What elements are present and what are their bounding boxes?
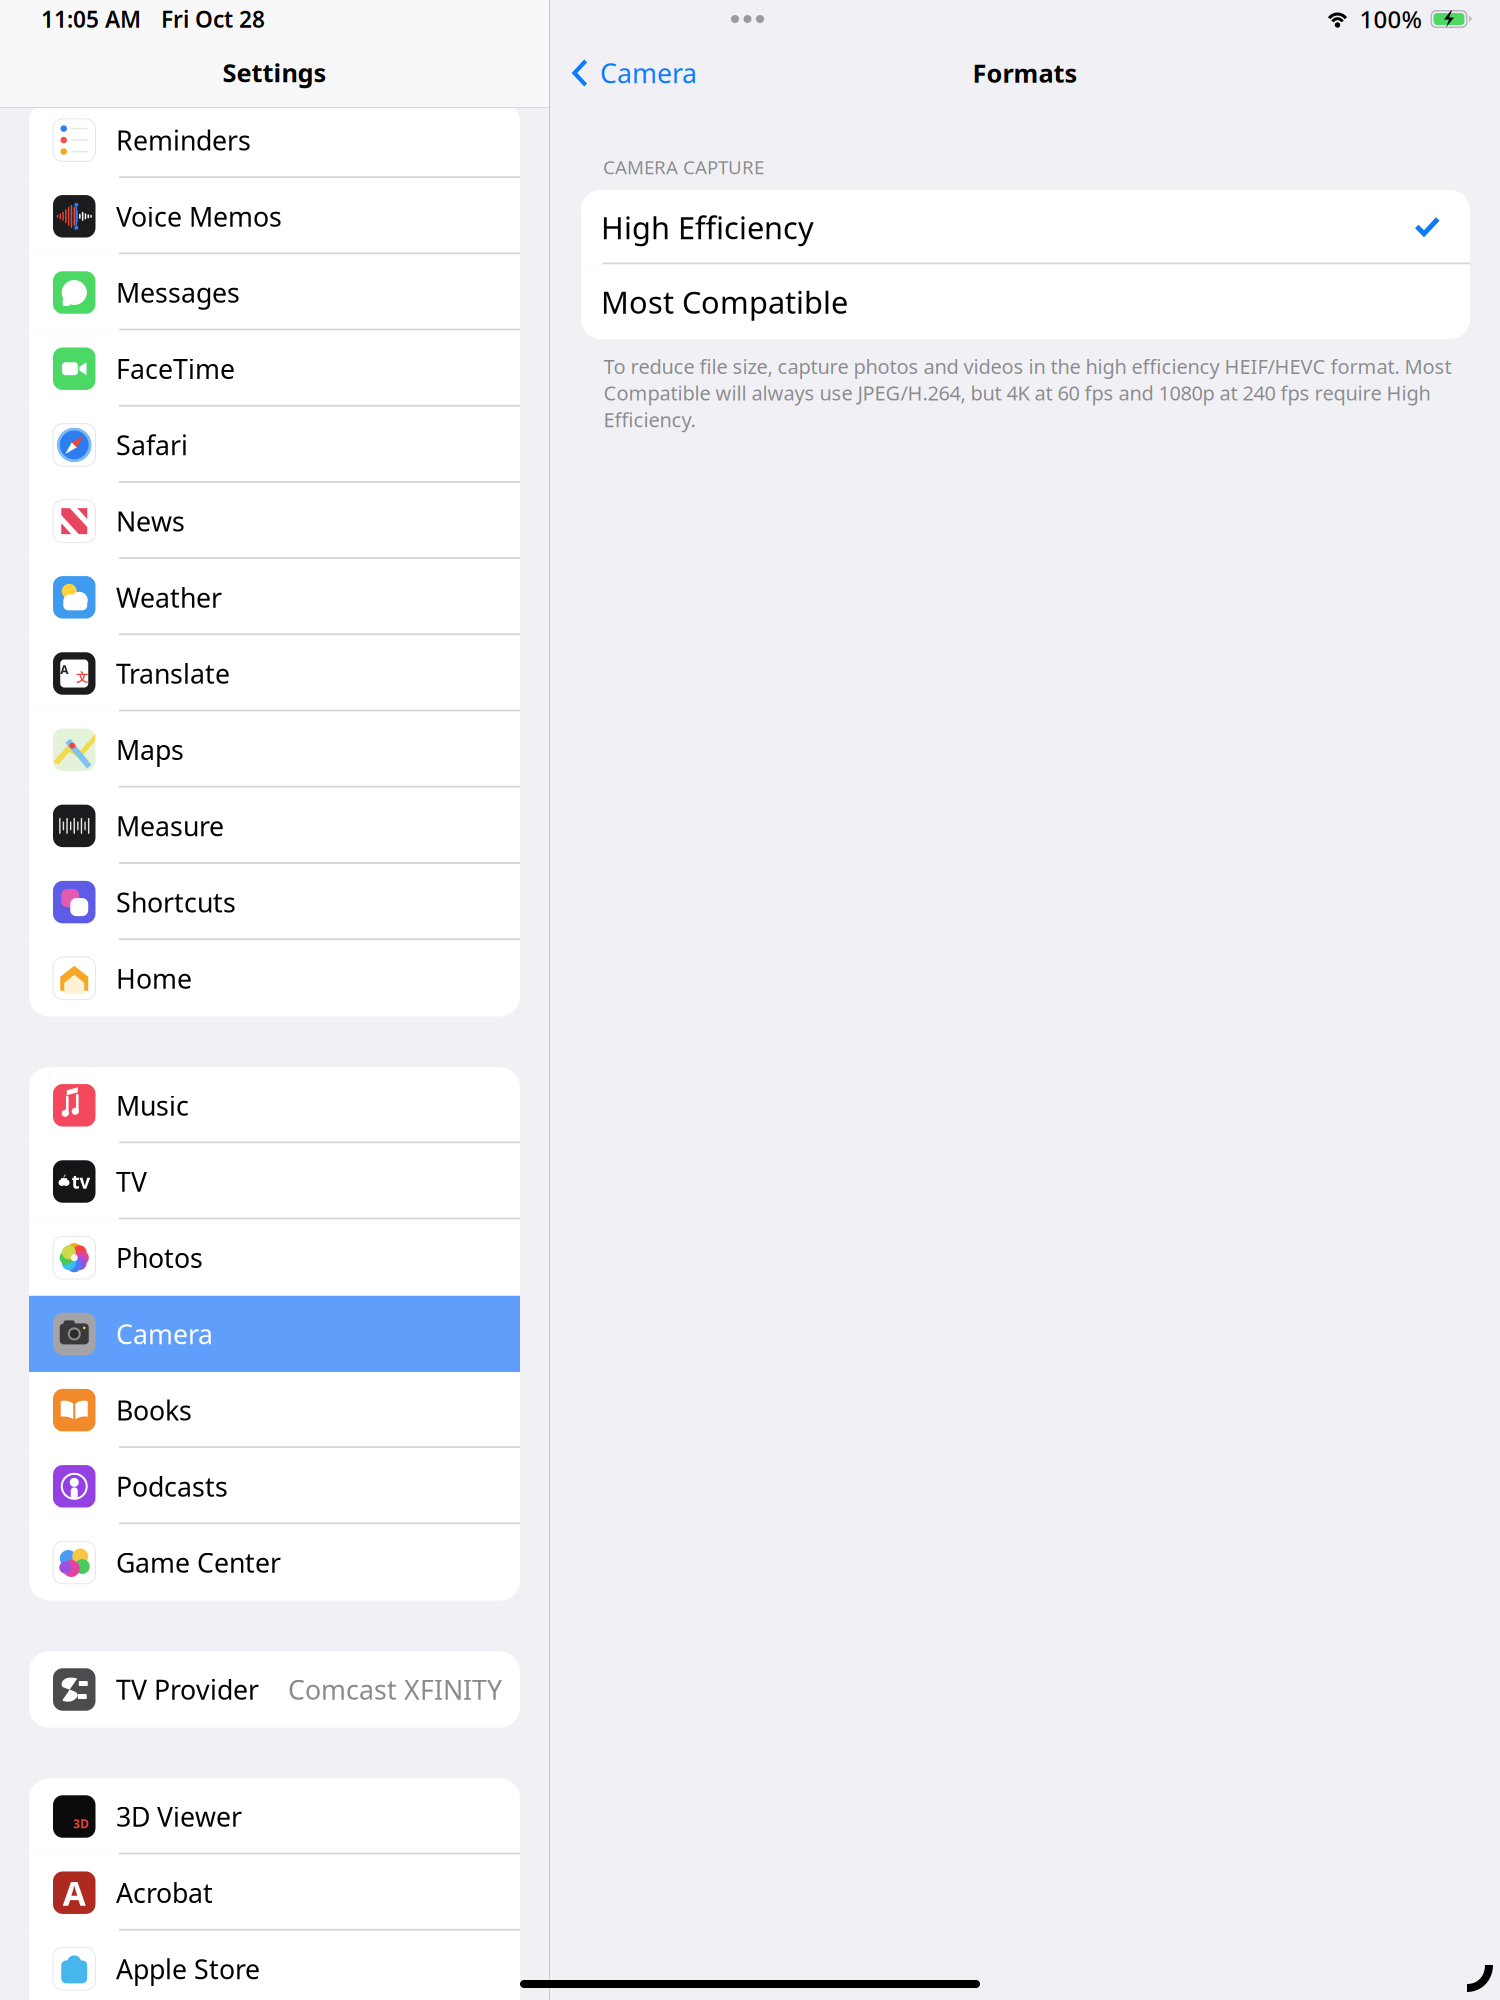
staticText: Settings (222, 56, 326, 89)
button[interactable]: Safari (29, 407, 520, 483)
staticText: Apple Store (116, 1951, 260, 1987)
button[interactable]: Messages (29, 254, 520, 331)
staticText: Camera (600, 55, 697, 91)
staticText: Home (116, 961, 192, 996)
staticText: Formats (972, 56, 1077, 90)
button[interactable]: Shortcuts (29, 864, 520, 940)
button[interactable]: High Efficiency (581, 190, 1470, 264)
button[interactable]: Camera (550, 38, 707, 108)
staticText: Photos (116, 1240, 203, 1275)
button[interactable]: FaceTime (29, 331, 520, 407)
button[interactable]: Voice Memos (29, 178, 520, 254)
staticText: Voice Memos (116, 199, 282, 234)
staticText: Books (116, 1392, 192, 1428)
staticText: Reminders (116, 122, 251, 158)
button[interactable]: Maps (29, 712, 520, 788)
button[interactable] (29, 1931, 520, 2000)
staticText: Comcast XFINITY (288, 1672, 502, 1707)
staticText: 11:05 AM (41, 4, 141, 34)
staticText: Maps (116, 732, 184, 767)
button[interactable]: Books (29, 1372, 520, 1448)
button[interactable]: Podcasts (29, 1448, 520, 1524)
button[interactable]: Home (29, 940, 520, 1016)
button[interactable]: 3D (29, 1778, 520, 1855)
button[interactable]: A (29, 1855, 520, 1931)
staticText: Camera (116, 1316, 213, 1352)
staticText: A (63, 1871, 86, 1915)
staticText: Most Compatible (601, 281, 848, 322)
button[interactable]: Weather (29, 559, 520, 635)
staticText: Shortcuts (116, 884, 236, 920)
staticText: Translate (116, 656, 230, 691)
staticText: Safari (116, 427, 188, 463)
button[interactable]: tv (29, 1143, 520, 1220)
staticText: 100% (1359, 3, 1421, 35)
button[interactable]: Camera (29, 1296, 520, 1372)
staticText: To reduce file size, capture photos and … (603, 353, 1451, 433)
button[interactable]: Game Center (29, 1524, 520, 1601)
staticText: Music (116, 1088, 189, 1123)
button[interactable]: Most Compatible (581, 264, 1470, 339)
staticText: CAMERA CAPTURE (603, 155, 764, 179)
staticText: Weather (116, 580, 222, 615)
button[interactable]: Measure (29, 788, 520, 864)
button[interactable]: Photos (29, 1220, 520, 1296)
button[interactable]: A (29, 635, 520, 712)
staticText: Game Center (116, 1545, 281, 1580)
button[interactable]: Music (29, 1067, 520, 1143)
staticText: TV Provider (116, 1672, 259, 1707)
staticText: tv (71, 1169, 90, 1194)
staticText: Acrobat (116, 1875, 213, 1910)
button[interactable]: News (29, 483, 520, 559)
staticText: TV (116, 1164, 147, 1199)
staticText: FaceTime (116, 351, 235, 386)
staticText: 3D Viewer (116, 1799, 242, 1834)
button[interactable]: Reminders (29, 102, 520, 178)
staticText: Fri Oct 28 (161, 4, 265, 34)
staticText: A (60, 661, 68, 677)
staticText: News (116, 503, 185, 539)
button[interactable]: TV Provider (29, 1651, 520, 1728)
staticText: 文 (76, 670, 88, 685)
staticText: 3D (73, 1816, 89, 1831)
staticText: Podcasts (116, 1469, 228, 1504)
staticText: High Efficiency (601, 207, 814, 248)
staticText: Measure (116, 808, 224, 844)
staticText: Messages (116, 275, 240, 310)
